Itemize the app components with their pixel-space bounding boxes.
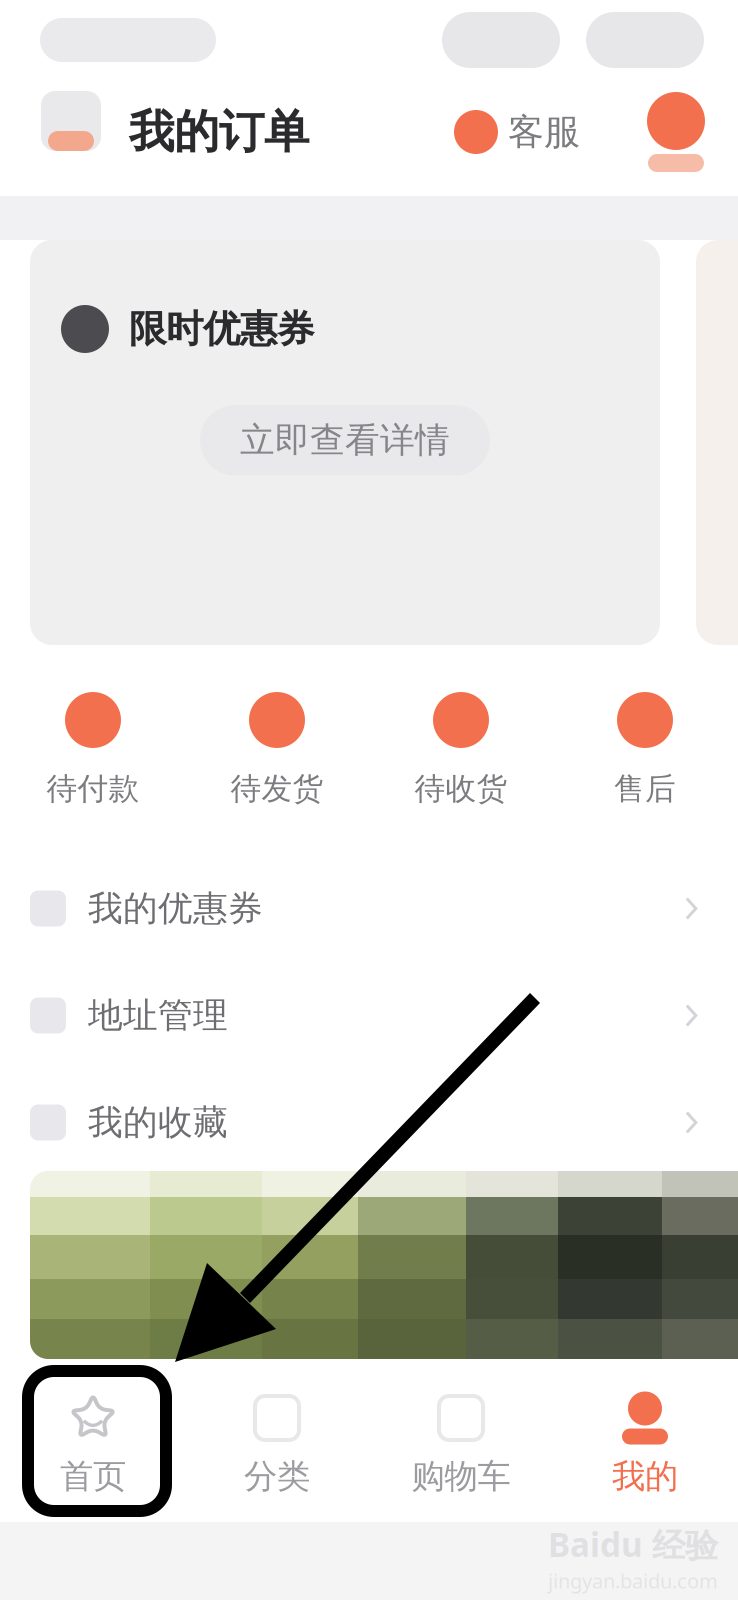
- staticText: 我的订单: [129, 104, 309, 160]
- button[interactable]: 待收货: [369, 668, 553, 855]
- staticText: 待发货: [230, 770, 323, 808]
- staticText: Baidu 经验: [548, 1522, 718, 1566]
- button[interactable]: Cart: [638, 90, 714, 174]
- button[interactable]: 我的: [553, 1356, 737, 1532]
- button[interactable]: 客服: [454, 110, 580, 154]
- button[interactable]: 售后: [553, 668, 737, 855]
- staticText: 待收货: [414, 770, 507, 808]
- button[interactable]: 待发货: [185, 668, 369, 855]
- button[interactable]: 我的优惠券: [0, 855, 738, 962]
- button[interactable]: 购物车: [369, 1356, 553, 1532]
- button[interactable]: 首页: [1, 1356, 185, 1532]
- staticText: 我的收藏: [88, 1101, 228, 1144]
- staticText: 待付款: [46, 770, 139, 808]
- staticText: 首页: [60, 1456, 126, 1497]
- button[interactable]: Promotion banner: [30, 1171, 738, 1359]
- button[interactable]: 待付款: [1, 668, 185, 855]
- staticText: 我的: [612, 1456, 678, 1497]
- button[interactable]: Store: [40, 91, 102, 173]
- staticText: 售后: [614, 770, 676, 808]
- staticText: 立即查看详情: [240, 419, 450, 462]
- button[interactable]: 分类: [185, 1356, 369, 1532]
- staticText: 购物车: [411, 1456, 510, 1497]
- staticText: 限时优惠券: [129, 306, 314, 352]
- staticText: jingyan.baidu.com: [548, 1567, 718, 1594]
- staticText: 地址管理: [88, 994, 228, 1037]
- button[interactable]: 我的收藏: [0, 1069, 738, 1176]
- staticText: 客服: [508, 110, 580, 154]
- staticText: 分类: [244, 1456, 310, 1497]
- button[interactable]: 地址管理: [0, 962, 738, 1069]
- staticText: 我的优惠券: [88, 887, 263, 930]
